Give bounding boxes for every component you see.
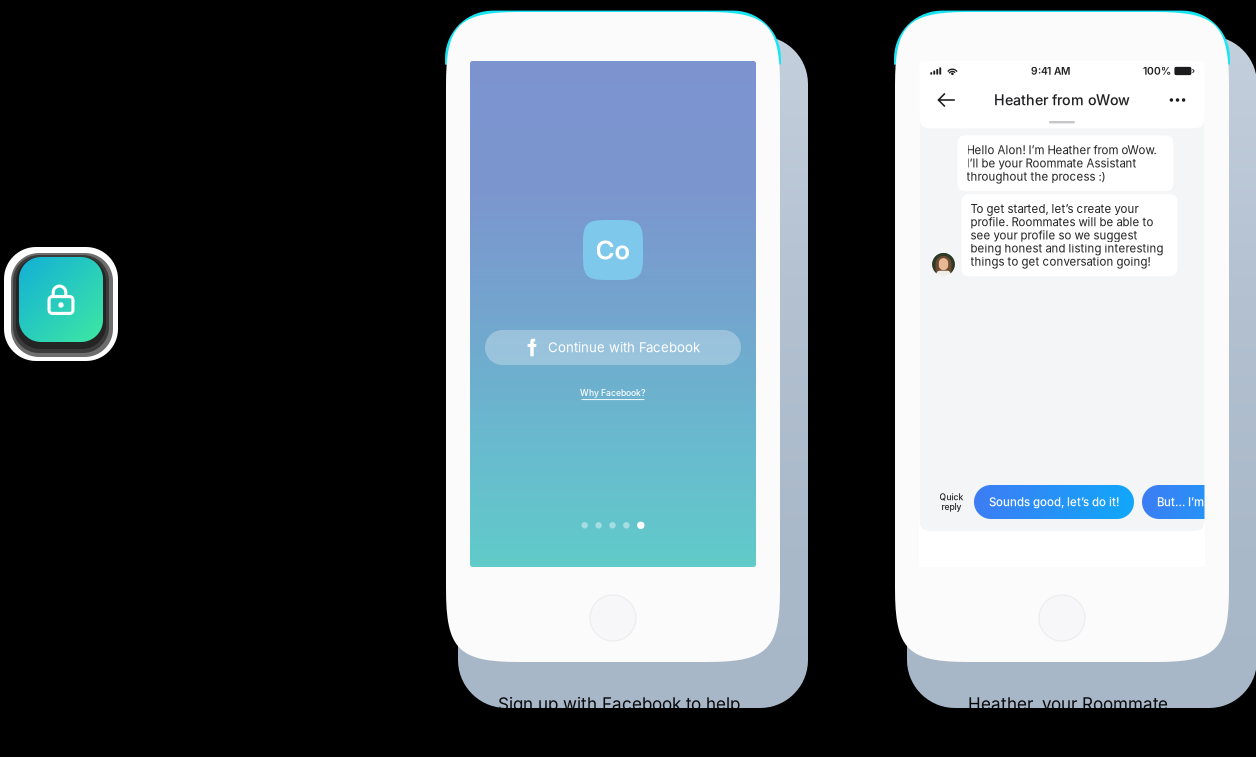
button[interactable]: But… I’m not sure (1142, 485, 1256, 519)
staticText: Heather from oWow (994, 92, 1130, 108)
button[interactable]: More options (1160, 89, 1194, 111)
staticText: reply (941, 502, 961, 512)
button[interactable]: Back (929, 89, 963, 111)
button[interactable]: Sounds good, let’s do it! (974, 485, 1134, 519)
staticText: Heather, your Roommate (968, 694, 1168, 714)
staticText: But… I’m not sure (1157, 495, 1252, 509)
staticText: To get started, let’s create your profil… (970, 202, 1163, 268)
staticText: Sounds good, let’s do it! (989, 495, 1119, 509)
staticText: Continue with Facebook (548, 340, 700, 355)
staticText: Hello Alon! I’m Heather from oWow. I’ll … (966, 143, 1156, 183)
staticText: Why Facebook? (580, 388, 646, 398)
staticText: Quick (939, 492, 963, 502)
button[interactable]: Continue with Facebook (485, 330, 741, 365)
button[interactable]: Why Facebook? (580, 387, 646, 401)
staticText: Co (595, 235, 630, 265)
staticText: Sign up with Facebook to help (498, 694, 740, 714)
staticText: 100% (1143, 65, 1171, 77)
staticText: 9:41 AM (1031, 65, 1070, 77)
